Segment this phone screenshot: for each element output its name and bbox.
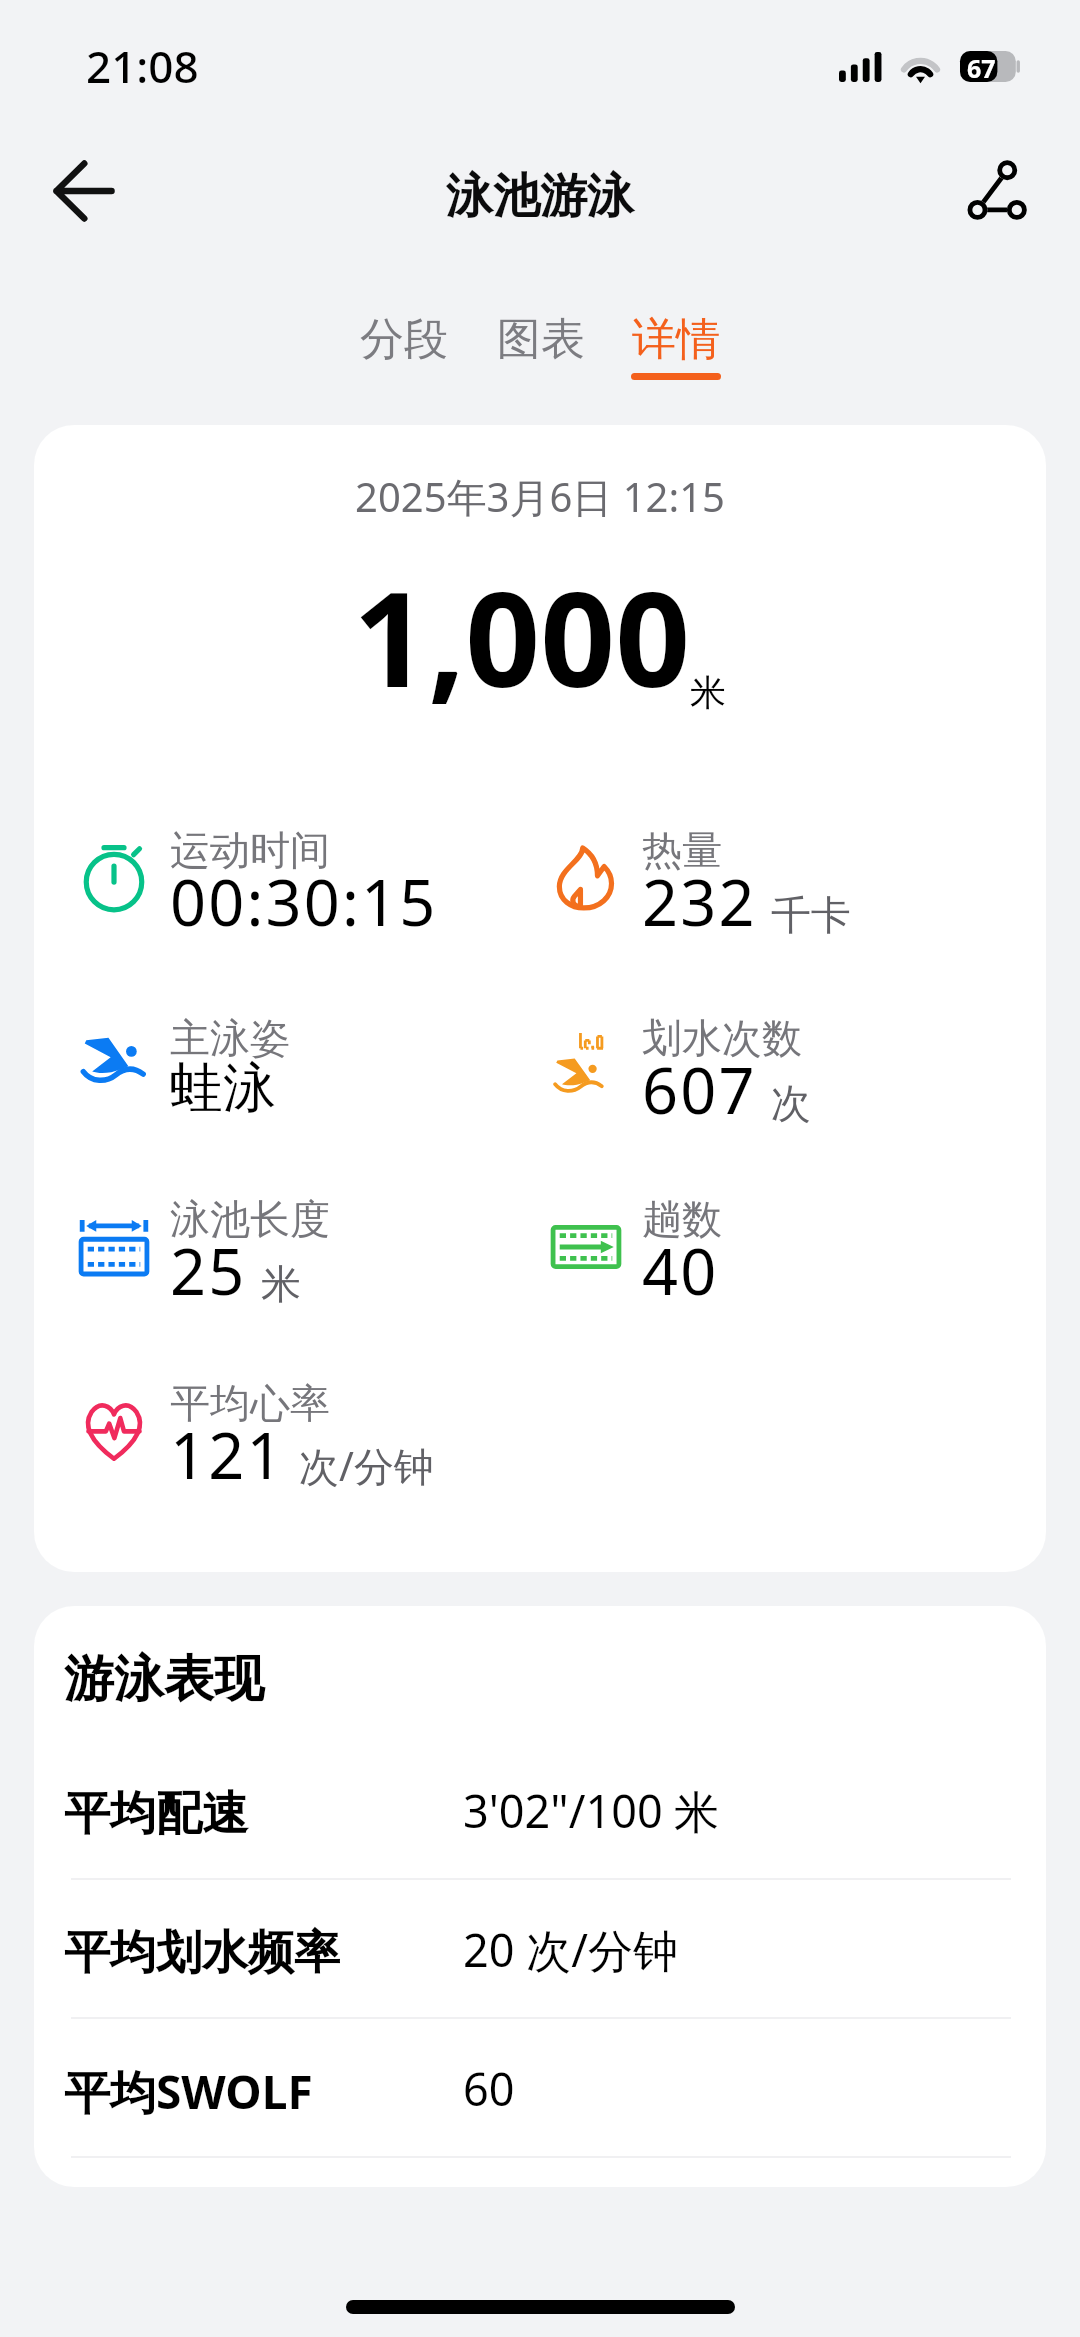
staticText: 平均划水频率 <box>64 1924 463 1982</box>
staticText: 1,000 <box>353 547 691 725</box>
staticText: 蛙泳 <box>170 1055 276 1122</box>
staticText: 分段 <box>360 312 448 367</box>
staticText: 00:30:15 <box>170 859 438 945</box>
button[interactable]: 分段 <box>348 300 460 385</box>
staticText: 热量 <box>642 825 722 875</box>
button[interactable]: 平均配速 <box>34 1741 1046 1880</box>
staticText: 游泳表现 <box>64 1648 264 1711</box>
staticText: 次/分钟 <box>299 1438 434 1493</box>
staticText: 60 <box>463 2058 515 2119</box>
staticText: 次 <box>771 1078 811 1128</box>
staticText: 607 <box>642 1047 757 1133</box>
staticText: 泳池游泳 <box>446 167 634 226</box>
staticText: 40 <box>642 1228 719 1314</box>
staticText: 平均SWOLF <box>64 2060 463 2123</box>
staticText: 平均心率 <box>170 1378 330 1428</box>
staticText: 米 <box>261 1259 301 1309</box>
staticText: 232 <box>642 859 757 945</box>
staticText: 趟数 <box>642 1194 722 1244</box>
staticText: 121 <box>170 1412 285 1498</box>
button[interactable]: 详情 <box>619 300 733 392</box>
staticText: 详情 <box>632 312 720 367</box>
staticText: 泳池长度 <box>170 1194 330 1244</box>
staticText: 千卡 <box>771 890 851 940</box>
staticText: 图表 <box>497 312 585 367</box>
button[interactable]: Back <box>28 135 140 247</box>
staticText: 3'02"/100 米 <box>463 1780 720 1841</box>
staticText: 67 <box>967 51 996 82</box>
staticText: 运动时间 <box>170 825 330 875</box>
staticText: 平均配速 <box>64 1785 463 1843</box>
button[interactable]: 图表 <box>485 300 597 385</box>
button[interactable]: 平均SWOLF <box>34 2019 1046 2158</box>
button[interactable]: 平均划水频率 <box>34 1880 1046 2019</box>
staticText: 划水次数 <box>642 1013 802 1063</box>
button[interactable]: Share <box>944 138 1050 244</box>
staticText: 25 <box>170 1228 247 1314</box>
staticText: 20 次/分钟 <box>463 1919 678 1980</box>
staticText: 2025年3月6日 12:15 <box>34 469 1046 524</box>
staticText: 主泳姿 <box>170 1013 290 1063</box>
staticText: 21:08 <box>86 36 199 96</box>
staticText: 米 <box>690 670 726 715</box>
